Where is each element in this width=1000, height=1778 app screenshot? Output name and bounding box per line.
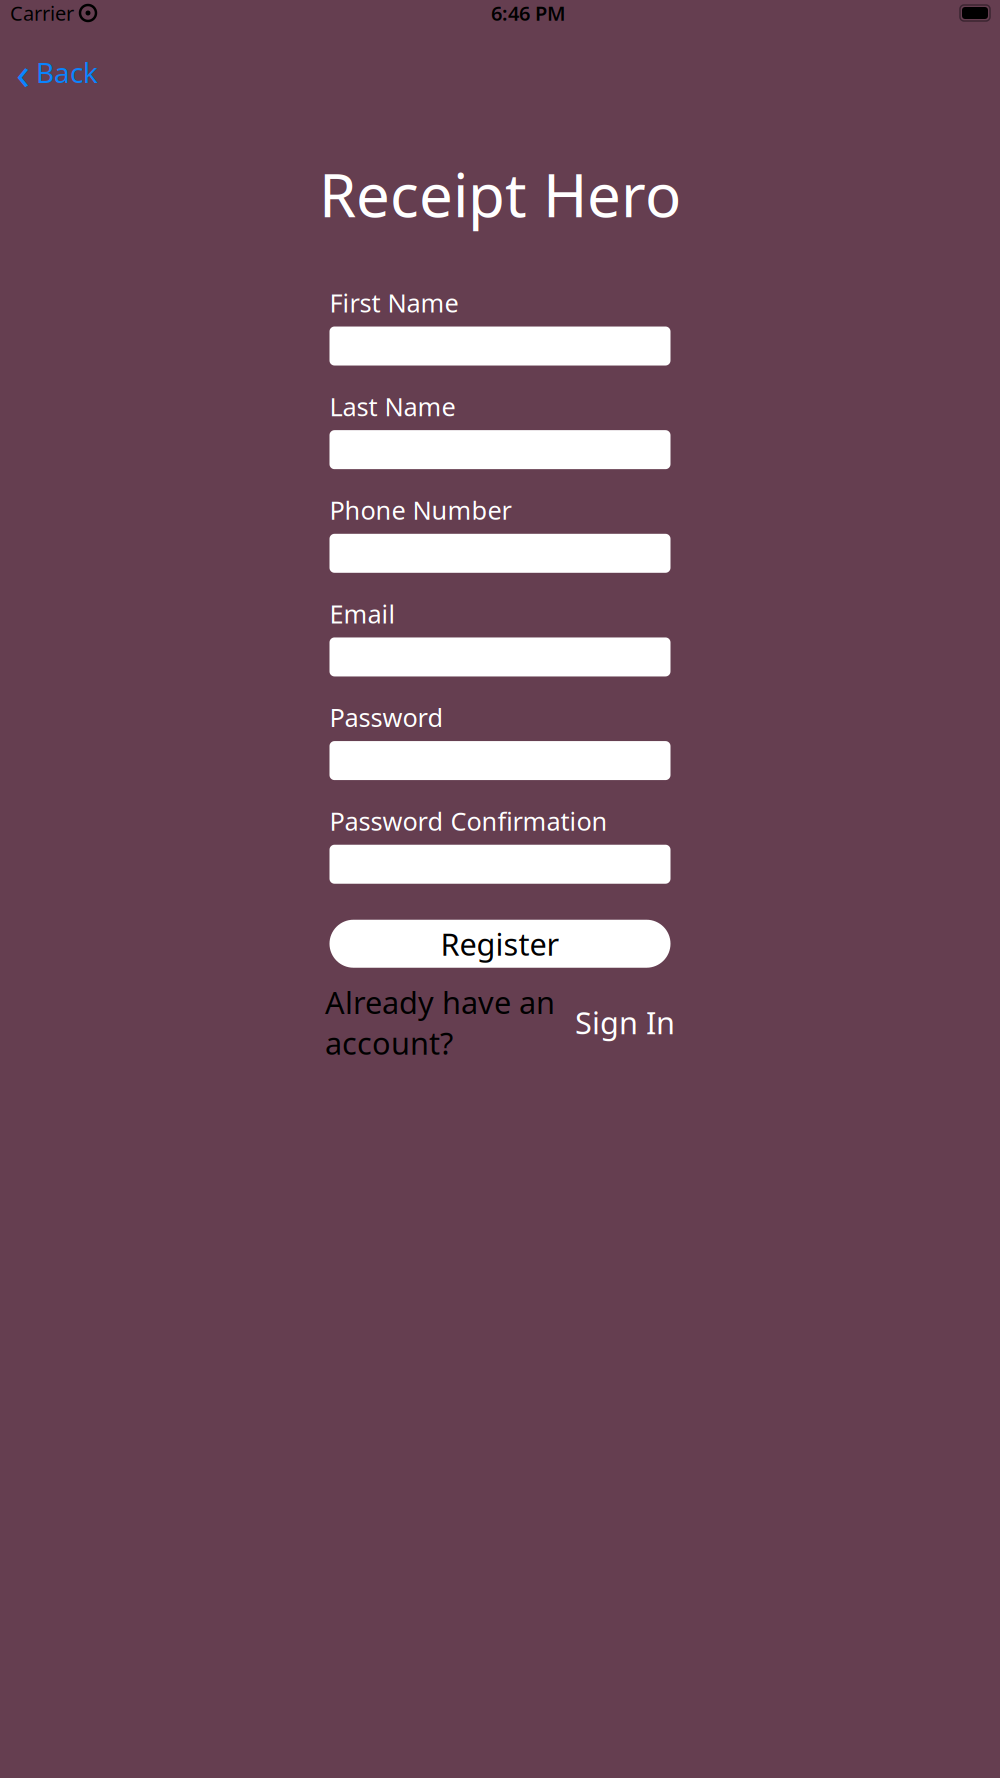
staticText: Carrier (10, 0, 74, 26)
staticText: Back (36, 53, 98, 91)
staticText: Phone Number (329, 493, 511, 527)
staticText: Password Confirmation (329, 804, 607, 838)
staticText: Last Name (329, 389, 455, 423)
staticText: Receipt Hero (319, 154, 681, 234)
staticText: ‹ (16, 42, 30, 102)
staticText: Sign In (575, 1002, 675, 1043)
staticText: Password (329, 700, 443, 734)
staticText: 6:46 PM (491, 0, 566, 26)
staticText: First Name (329, 286, 458, 319)
button[interactable]: Register (329, 920, 670, 968)
button[interactable]: Sign In (575, 1002, 675, 1043)
staticText: Already have an account? (325, 982, 555, 1063)
staticText: Email (329, 597, 395, 630)
staticText (74, 0, 79, 26)
button[interactable]: ‹ (8, 38, 106, 106)
staticText: Register (440, 923, 559, 964)
